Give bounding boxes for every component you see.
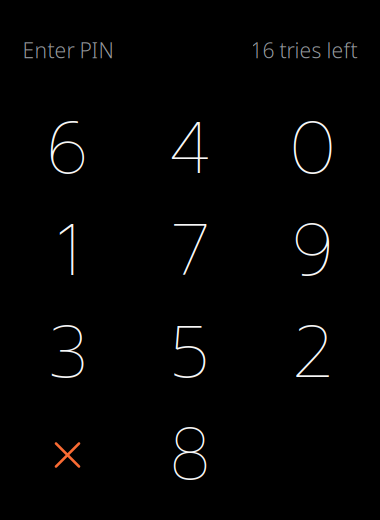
staticText: 8 [169,401,210,509]
staticText: 3 [47,299,87,407]
button[interactable]: 6 [6,98,129,200]
staticText: Enter PIN [22,36,113,64]
staticText: 6 [46,95,88,203]
button[interactable]: 4 [129,98,251,200]
button[interactable]: 8 [129,404,251,506]
staticText: 1 [55,197,79,305]
button[interactable]: 9 [251,200,374,302]
button[interactable]: 5 [129,302,251,404]
button[interactable]: 1 [6,200,129,302]
button[interactable]: 2 [251,302,374,404]
staticText: 7 [170,197,209,305]
staticText: 0 [289,95,335,203]
button[interactable]: 7 [129,200,251,302]
staticText: 4 [169,95,211,203]
button[interactable]: Delete [6,404,129,506]
staticText: 5 [170,299,210,407]
button[interactable]: 3 [6,302,129,404]
staticText: 2 [292,299,333,407]
staticText: 9 [291,197,333,305]
button[interactable]: 0 [251,98,374,200]
staticText: 16 tries left [250,36,357,64]
